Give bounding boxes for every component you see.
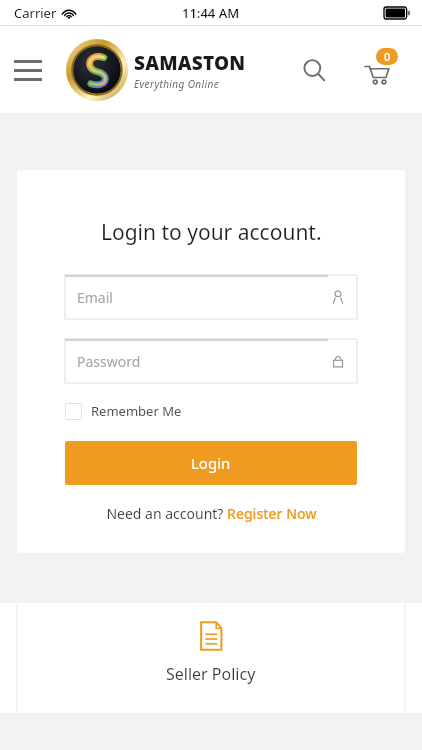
button[interactable]: Login	[65, 441, 357, 485]
staticText: Login to your account.	[101, 218, 322, 247]
staticText: Remember Me	[91, 402, 182, 420]
staticText: 0	[384, 49, 391, 64]
staticText: Carrier	[14, 4, 57, 22]
button[interactable]: Search	[294, 50, 334, 90]
button[interactable]: Password	[65, 339, 357, 383]
button[interactable]: Menu	[14, 55, 44, 85]
button[interactable]: Need an account? Register Now	[106, 504, 317, 523]
staticText: Need an account? Register Now	[106, 504, 317, 523]
button[interactable]: Email	[65, 275, 357, 319]
button[interactable]: Remember Me	[65, 402, 357, 420]
button[interactable]: Seller Policy	[166, 621, 256, 685]
staticText: Seller Policy	[166, 663, 256, 685]
button[interactable]: Cart	[352, 46, 400, 94]
staticText: 11:44 AM	[182, 4, 240, 22]
staticText: Everything Online	[134, 77, 220, 91]
staticText: Login	[191, 453, 231, 473]
staticText: Email	[77, 288, 113, 307]
staticText: Password	[77, 352, 141, 371]
staticText: SAMASTON	[134, 50, 246, 76]
